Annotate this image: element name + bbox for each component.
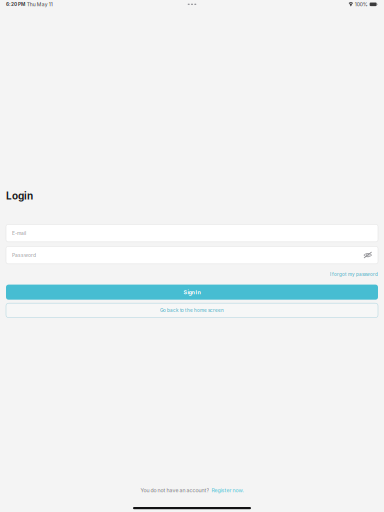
button[interactable]: Go back to the home screen xyxy=(6,303,378,318)
button[interactable]: I forgot my password xyxy=(6,270,378,278)
staticText: 100% xyxy=(355,1,368,7)
button[interactable]: Sign In xyxy=(6,285,378,300)
staticText: E-mail xyxy=(12,230,26,236)
button[interactable]: Password xyxy=(6,246,378,264)
staticText: 6:20 PM xyxy=(6,1,25,7)
staticText: Login xyxy=(6,190,33,202)
button[interactable]: Register now. xyxy=(212,487,244,493)
staticText: Register now. xyxy=(212,487,244,493)
staticText: You do not have an account? xyxy=(140,487,209,493)
staticText: Sign In xyxy=(183,289,200,295)
staticText: Password xyxy=(12,252,36,258)
button[interactable]: E-mail xyxy=(6,224,378,242)
staticText: I forgot my password xyxy=(330,272,378,277)
staticText: Thu May 11 xyxy=(27,1,53,7)
staticText: Go back to the home screen xyxy=(160,308,224,313)
